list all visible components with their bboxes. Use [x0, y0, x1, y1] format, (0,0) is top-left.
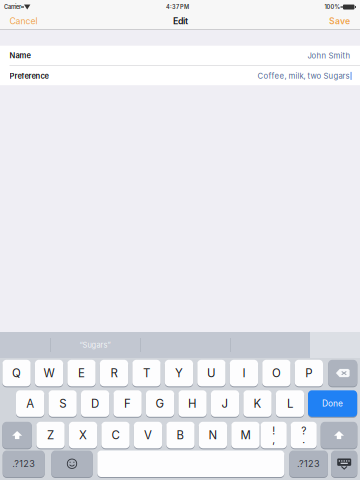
button[interactable]: U: [197, 359, 226, 387]
button[interactable]: Done: [308, 390, 357, 417]
button[interactable]: S: [48, 390, 77, 417]
staticText: N: [208, 428, 217, 442]
button[interactable]: I: [230, 359, 258, 387]
staticText: B: [176, 428, 184, 442]
staticText: G: [156, 397, 165, 410]
staticText: Z: [47, 428, 54, 442]
staticText: F: [124, 397, 131, 410]
button[interactable]: Q: [2, 359, 31, 387]
button[interactable]: .?123: [289, 450, 328, 477]
button[interactable]: H: [178, 390, 207, 417]
button[interactable]: [97, 450, 284, 477]
staticText: L: [287, 397, 293, 410]
staticText: V: [144, 428, 152, 442]
staticText: Cancel: [9, 16, 37, 26]
staticText: .?123: [12, 458, 35, 469]
button[interactable]: J: [211, 390, 239, 417]
staticText: Coffee, milk, two Sugars: [258, 71, 350, 81]
button[interactable]: D: [81, 390, 109, 417]
button[interactable]: !: [261, 421, 287, 449]
staticText: “Sugars”: [79, 340, 110, 349]
staticText: R: [110, 366, 117, 380]
staticText: I: [242, 366, 245, 380]
button[interactable]: G: [146, 390, 174, 417]
staticText: Carrier: [4, 4, 21, 10]
button[interactable]: [331, 450, 357, 477]
staticText: D: [91, 397, 99, 410]
button[interactable]: V: [134, 421, 162, 449]
staticText: A: [26, 397, 34, 410]
button[interactable]: R: [100, 359, 128, 387]
button[interactable]: M: [231, 421, 260, 449]
staticText: K: [253, 397, 261, 410]
button[interactable]: L: [276, 390, 304, 417]
staticText: !: [272, 425, 275, 437]
button[interactable]: P: [295, 359, 323, 387]
staticText: ?: [301, 425, 306, 437]
button[interactable]: A: [16, 390, 44, 417]
staticText: Edit: [173, 16, 188, 26]
staticText: Y: [175, 366, 183, 380]
staticText: U: [207, 366, 216, 380]
button[interactable]: K: [243, 390, 272, 417]
staticText: 100%: [324, 4, 340, 10]
staticText: M: [240, 428, 250, 442]
button[interactable]: W: [35, 359, 63, 387]
staticText: S: [59, 397, 66, 410]
staticText: P: [305, 366, 312, 380]
staticText: John Smith: [307, 51, 350, 60]
button[interactable]: E: [67, 359, 96, 387]
button[interactable]: Y: [165, 359, 193, 387]
button[interactable]: [51, 450, 93, 477]
button[interactable]: Name: [0, 46, 360, 65]
button[interactable]: T: [132, 359, 161, 387]
staticText: .?123: [297, 458, 320, 469]
staticText: Done: [322, 398, 343, 409]
button[interactable]: Preference: [0, 66, 360, 86]
button[interactable]: Z: [36, 421, 65, 449]
button[interactable]: “Sugars”: [50, 332, 140, 358]
button[interactable]: [328, 359, 357, 387]
staticText: 4:37 PM: [166, 4, 189, 10]
staticText: X: [79, 428, 87, 442]
button[interactable]: .?123: [3, 450, 45, 477]
staticText: E: [78, 366, 85, 380]
button[interactable]: Cancel: [9, 13, 49, 29]
button[interactable]: X: [69, 421, 97, 449]
staticText: Q: [12, 366, 21, 380]
button[interactable]: [2, 421, 32, 449]
staticText: Preference: [9, 71, 48, 80]
button[interactable]: O: [262, 359, 290, 387]
staticText: J: [221, 397, 228, 410]
button[interactable]: N: [199, 421, 227, 449]
button[interactable]: Save: [310, 13, 350, 29]
button[interactable]: ?: [291, 421, 317, 449]
button[interactable]: C: [101, 421, 130, 449]
staticText: .: [302, 433, 305, 446]
staticText: H: [188, 397, 197, 410]
button[interactable]: [321, 421, 357, 449]
staticText: C: [111, 428, 119, 442]
staticText: Name: [9, 51, 30, 60]
staticText: ,: [272, 433, 275, 446]
staticText: T: [143, 366, 150, 380]
button[interactable]: F: [113, 390, 142, 417]
staticText: Save: [329, 16, 350, 26]
button[interactable]: B: [166, 421, 195, 449]
staticText: O: [272, 366, 281, 380]
staticText: W: [43, 366, 54, 380]
